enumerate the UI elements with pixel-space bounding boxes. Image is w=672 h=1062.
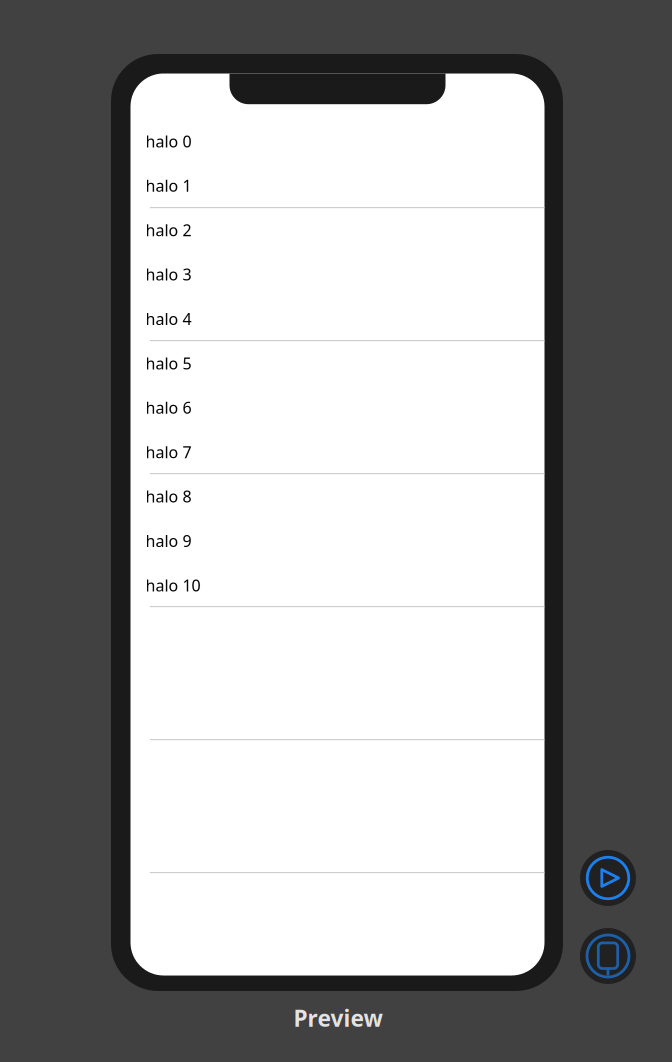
staticText: halo 5 <box>145 353 191 374</box>
staticText: halo 2 <box>145 219 191 241</box>
button[interactable]: Play preview <box>580 850 636 906</box>
staticText: Preview <box>293 1003 382 1033</box>
staticText: halo 10 <box>145 575 200 596</box>
staticText: halo 0 <box>145 131 191 152</box>
staticText: halo 1 <box>145 175 191 196</box>
staticText: halo 6 <box>145 397 191 418</box>
button[interactable]: halo 2 <box>145 208 544 252</box>
button[interactable]: halo 6 <box>145 385 544 430</box>
staticText: halo 8 <box>145 486 191 507</box>
button[interactable]: Preview on device <box>580 928 636 984</box>
button[interactable]: halo 5 <box>145 341 544 385</box>
staticText: halo 4 <box>145 308 191 329</box>
button[interactable]: halo 10 <box>145 563 544 607</box>
staticText: halo 3 <box>145 264 191 285</box>
button[interactable]: halo 8 <box>145 474 544 519</box>
staticText: halo 9 <box>145 530 191 551</box>
button[interactable]: halo 1 <box>145 163 544 208</box>
button[interactable]: halo 7 <box>145 430 544 474</box>
button[interactable]: halo 9 <box>145 519 544 563</box>
button[interactable]: halo 3 <box>145 252 544 297</box>
staticText: halo 7 <box>145 441 191 463</box>
button[interactable]: halo 0 <box>145 119 544 163</box>
button[interactable]: halo 4 <box>145 297 544 341</box>
